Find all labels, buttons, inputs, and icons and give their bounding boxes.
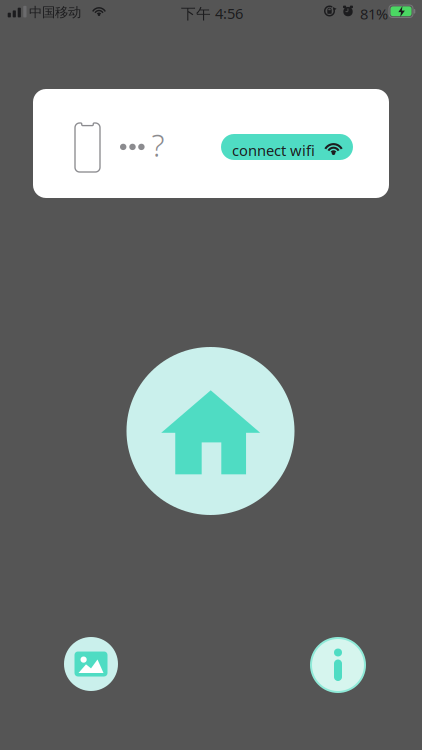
button[interactable]: connect wifi [221,134,353,160]
staticText: ? [151,124,164,165]
staticText: 81% [360,4,388,23]
button[interactable]: Photos [64,637,118,691]
button[interactable]: Home [126,347,294,515]
staticText: 中国移动 [29,4,81,20]
button[interactable]: Info [310,637,366,693]
staticText: 下午 4:56 [181,3,243,23]
staticText: connect wifi [232,140,315,160]
